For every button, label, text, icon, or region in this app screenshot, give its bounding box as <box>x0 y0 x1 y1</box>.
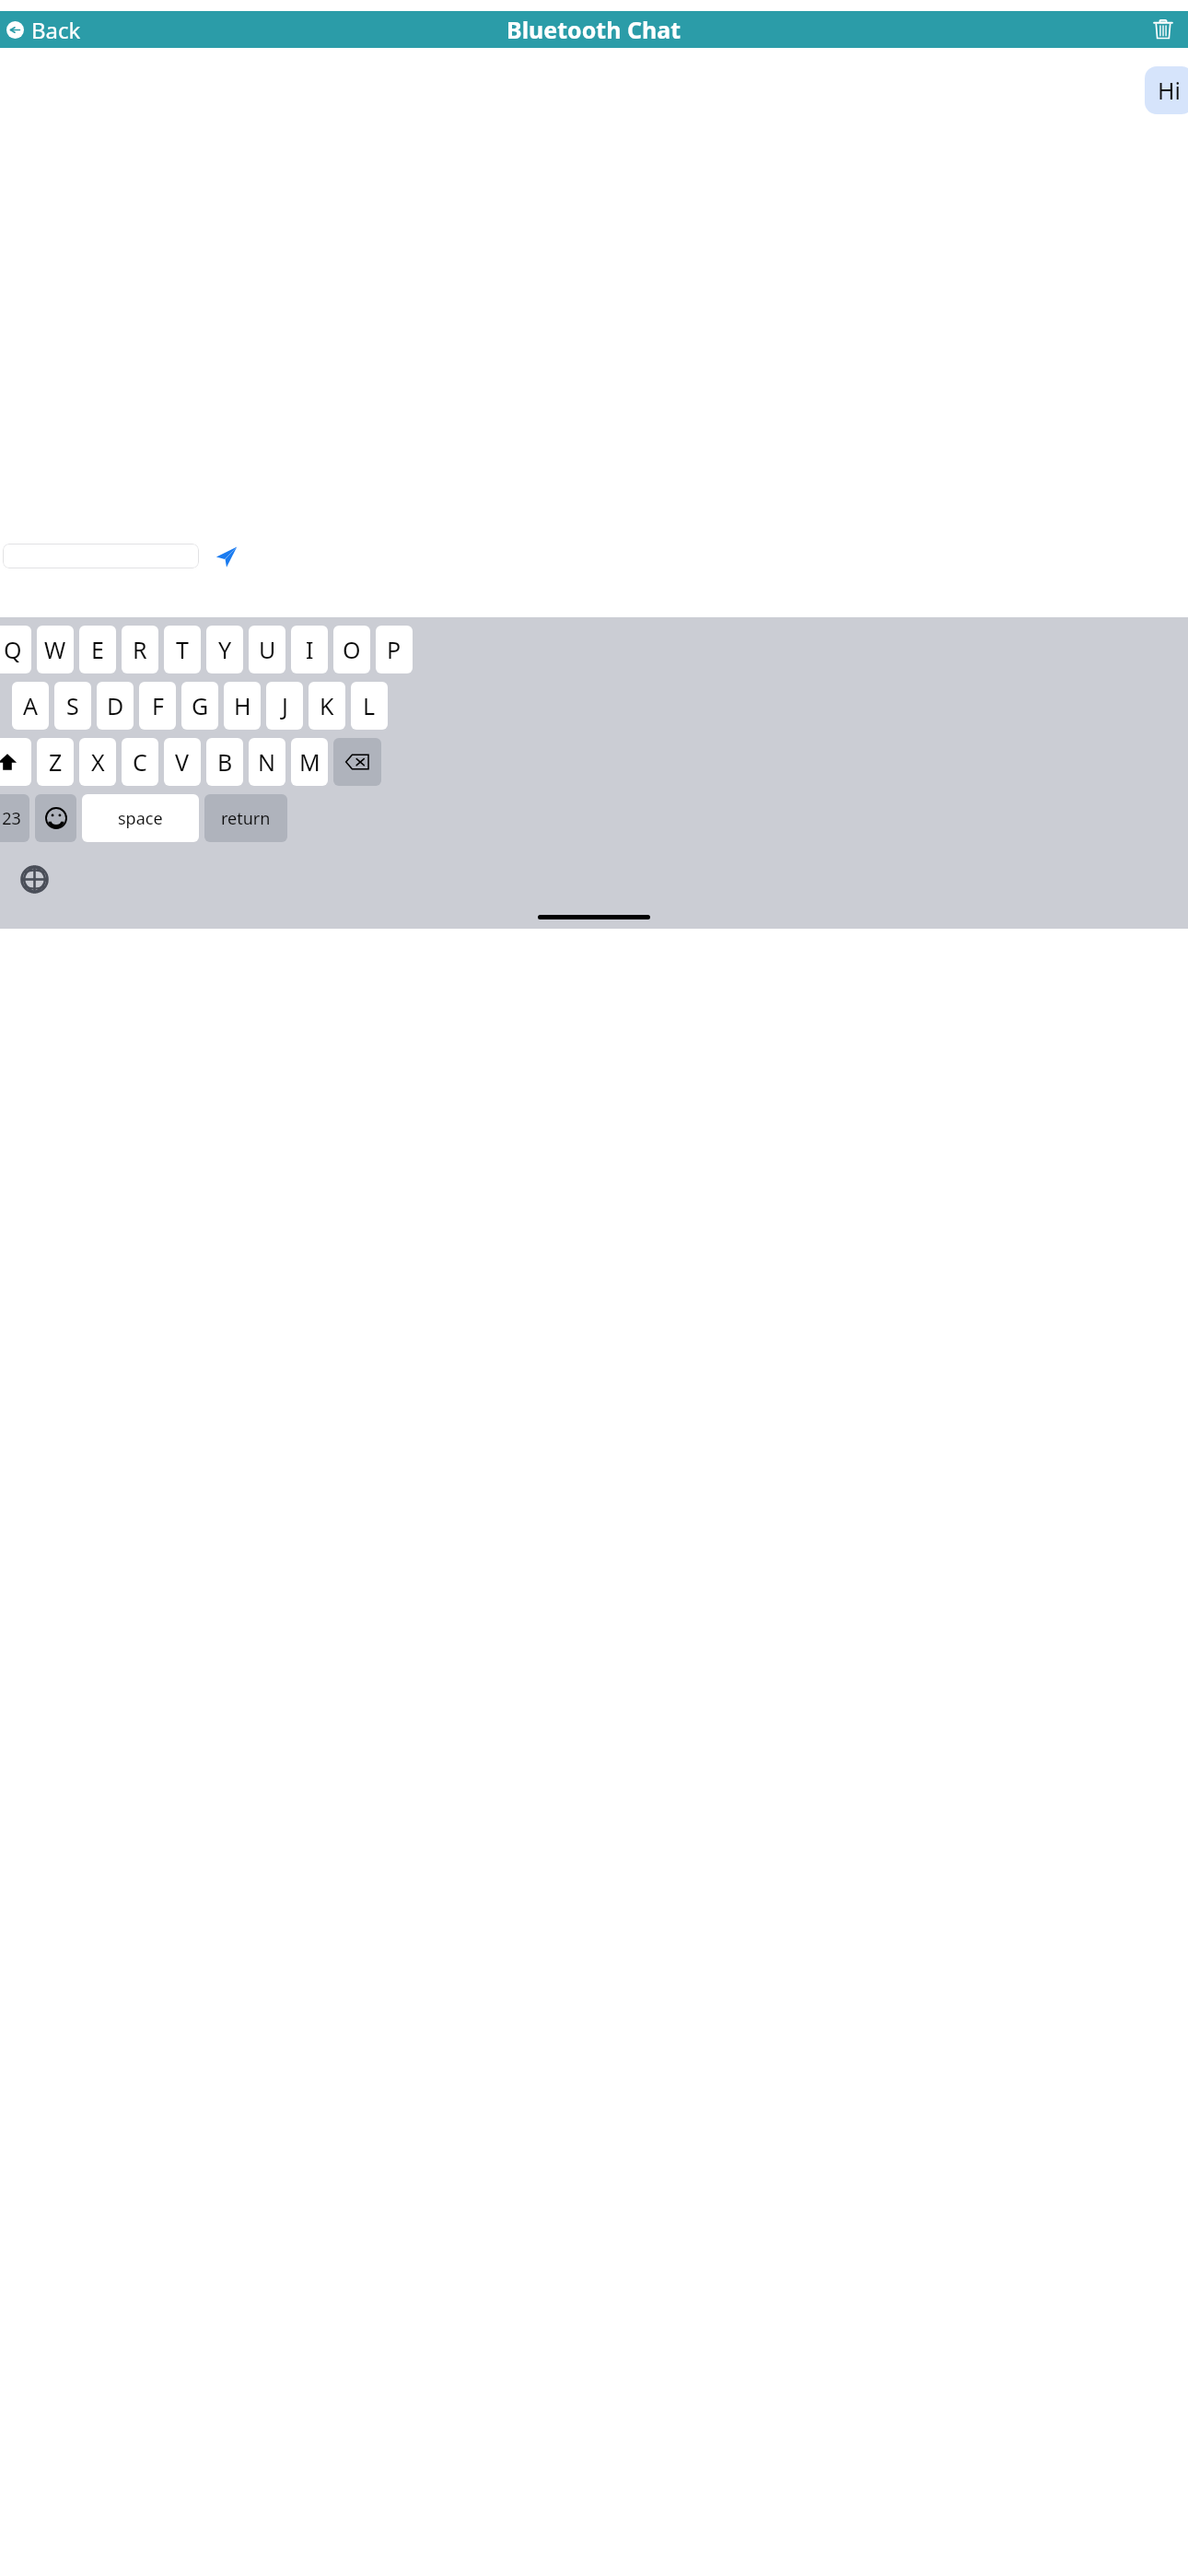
button[interactable]: F <box>139 682 176 730</box>
staticText: A <box>23 690 38 721</box>
button[interactable]: G <box>181 682 218 730</box>
staticText: J <box>282 690 288 721</box>
button[interactable]: E <box>79 626 116 673</box>
staticText: Z <box>49 746 63 778</box>
staticText: Q <box>4 634 22 665</box>
button[interactable]: I <box>291 626 328 673</box>
staticText: U <box>259 634 276 665</box>
button[interactable]: Z <box>37 738 74 786</box>
staticText: Back <box>31 15 81 45</box>
staticText: E <box>91 634 104 665</box>
staticText: R <box>133 634 147 665</box>
button[interactable]: J <box>266 682 303 730</box>
button[interactable]: return <box>204 794 287 842</box>
button[interactable] <box>3 544 199 568</box>
button[interactable]: V <box>164 738 201 786</box>
button[interactable]: Delete conversation <box>1149 16 1177 43</box>
staticText: T <box>176 634 189 665</box>
button[interactable]: U <box>249 626 285 673</box>
staticText: I <box>306 634 314 665</box>
button[interactable]: L <box>351 682 388 730</box>
button[interactable]: X <box>79 738 116 786</box>
other: Emoji <box>45 807 67 829</box>
button[interactable]: T <box>164 626 201 673</box>
staticText: K <box>320 690 334 721</box>
staticText: L <box>363 690 376 721</box>
button[interactable]: B <box>206 738 243 786</box>
button[interactable]: Q <box>0 626 31 673</box>
button[interactable]: Backspace <box>333 738 381 786</box>
button[interactable]: H <box>224 682 261 730</box>
staticText: V <box>175 746 190 778</box>
button[interactable]: Send <box>210 540 243 573</box>
staticText: Hi <box>1158 75 1181 106</box>
staticText: D <box>107 690 124 721</box>
button[interactable]: N <box>249 738 285 786</box>
button[interactable]: Back <box>6 15 87 45</box>
button[interactable]: S <box>54 682 91 730</box>
button[interactable]: Y <box>206 626 243 673</box>
button[interactable]: space <box>82 794 199 842</box>
button[interactable]: W <box>37 626 74 673</box>
button[interactable]: Shift <box>0 738 31 786</box>
button[interactable]: Hi <box>1145 66 1188 114</box>
staticText: W <box>44 634 66 665</box>
button[interactable]: R <box>122 626 158 673</box>
button[interactable]: D <box>97 682 134 730</box>
staticText: S <box>66 690 79 721</box>
staticText: C <box>133 746 147 778</box>
staticText: G <box>192 690 209 721</box>
button[interactable]: P <box>376 626 413 673</box>
button[interactable]: 123 <box>0 794 29 842</box>
button[interactable]: C <box>122 738 158 786</box>
staticText: P <box>387 634 402 665</box>
other: Shift <box>0 751 18 773</box>
staticText: F <box>152 690 164 721</box>
button[interactable]: A <box>12 682 49 730</box>
button[interactable]: M <box>291 738 328 786</box>
staticText: space <box>118 807 163 830</box>
button[interactable]: Emoji <box>35 794 76 842</box>
staticText: 123 <box>0 807 21 830</box>
staticText: H <box>234 690 251 721</box>
staticText: Bluetooth Chat <box>507 14 681 45</box>
other: Backspace <box>344 749 370 775</box>
staticText: O <box>343 634 361 665</box>
staticText: M <box>299 746 320 778</box>
button[interactable]: K <box>309 682 345 730</box>
staticText: B <box>217 746 233 778</box>
button[interactable]: Change keyboard language <box>15 860 53 898</box>
button[interactable]: O <box>333 626 370 673</box>
staticText: Y <box>218 634 232 665</box>
staticText: X <box>91 746 105 778</box>
staticText: N <box>258 746 276 778</box>
staticText: return <box>221 807 271 830</box>
